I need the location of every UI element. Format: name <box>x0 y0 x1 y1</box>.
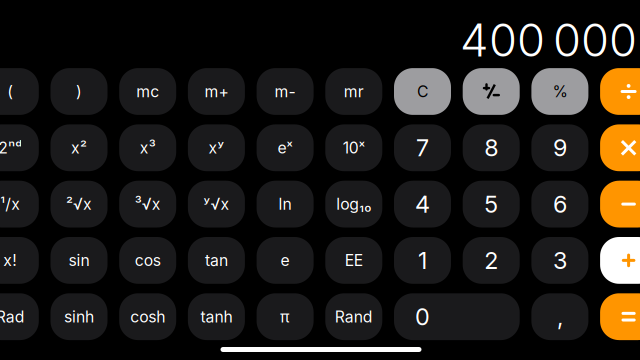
button[interactable]: sin <box>50 237 107 284</box>
button[interactable]: ʸ√x <box>188 181 245 227</box>
button[interactable]: Equals <box>600 293 640 340</box>
button[interactable]: log₁₀ <box>325 181 382 227</box>
button[interactable]: eˣ <box>257 124 314 171</box>
staticText: Rand <box>335 307 373 326</box>
staticText: 6 <box>553 190 567 218</box>
staticText: ¹/x <box>0 195 20 214</box>
button[interactable]: e <box>257 237 314 284</box>
button[interactable]: cos <box>119 237 176 284</box>
button[interactable]: 0 <box>394 293 520 340</box>
staticText: 8 <box>484 134 498 162</box>
button[interactable]: tan <box>188 237 245 284</box>
button[interactable]: ) <box>50 68 107 115</box>
staticText: tanh <box>200 307 232 326</box>
staticText: mr <box>344 82 364 101</box>
button[interactable]: 6 <box>531 181 588 227</box>
button[interactable]: m- <box>257 68 314 115</box>
button[interactable]: Rad <box>0 293 39 340</box>
button[interactable]: Plus Minus <box>463 68 520 115</box>
staticText: 1 <box>418 246 427 275</box>
staticText: x² <box>71 138 87 157</box>
button[interactable]: , <box>531 293 588 340</box>
button[interactable]: x! <box>0 237 39 284</box>
staticText: 10ˣ <box>343 138 365 157</box>
button[interactable]: ²√x <box>50 181 107 227</box>
staticText: m- <box>275 82 296 101</box>
staticText: , <box>557 302 563 331</box>
button[interactable]: EE <box>325 237 382 284</box>
button[interactable]: mc <box>119 68 176 115</box>
button[interactable]: 2 <box>463 237 520 284</box>
staticText: ʸ√x <box>203 195 229 214</box>
staticText: ln <box>279 195 292 214</box>
button[interactable]: C <box>394 68 451 115</box>
staticText: ) <box>76 82 82 101</box>
staticText: m+ <box>204 82 228 101</box>
staticText: 9 <box>553 134 567 162</box>
staticText: C <box>417 82 428 101</box>
staticText: cos <box>135 251 161 270</box>
button[interactable]: 10ˣ <box>325 124 382 171</box>
button[interactable]: % <box>531 68 588 115</box>
button[interactable]: Rand <box>325 293 382 340</box>
button[interactable]: 8 <box>463 124 520 171</box>
staticText: 2ⁿᵈ <box>0 138 22 157</box>
button[interactable]: 9 <box>531 124 588 171</box>
staticText: xʸ <box>208 138 224 157</box>
button[interactable]: mr <box>325 68 382 115</box>
staticText: ²√x <box>66 195 92 214</box>
button[interactable]: 7 <box>394 124 451 171</box>
button[interactable]: Multiply <box>600 124 640 171</box>
staticText: e <box>281 251 290 270</box>
staticText: tan <box>205 251 228 270</box>
staticText: cosh <box>130 307 165 326</box>
button[interactable]: 4 <box>394 181 451 227</box>
staticText: π <box>280 307 290 326</box>
staticText: 3 <box>553 246 567 275</box>
staticText: 2 <box>484 246 498 275</box>
staticText: 0 <box>415 302 430 331</box>
staticText: Rad <box>0 307 25 326</box>
staticText: ( <box>7 82 13 101</box>
button[interactable]: Divide <box>600 68 640 115</box>
button[interactable]: π <box>257 293 314 340</box>
staticText: sinh <box>64 307 94 326</box>
staticText: 5 <box>484 190 498 218</box>
button[interactable]: x³ <box>119 124 176 171</box>
button[interactable]: 2ⁿᵈ <box>0 124 39 171</box>
button[interactable]: ( <box>0 68 39 115</box>
button[interactable]: x² <box>50 124 107 171</box>
button[interactable]: tanh <box>188 293 245 340</box>
staticText: 400 000 <box>460 13 637 67</box>
staticText: 7 <box>416 134 429 162</box>
button[interactable]: 5 <box>463 181 520 227</box>
staticText: x³ <box>140 138 156 157</box>
button[interactable]: ³√x <box>119 181 176 227</box>
button[interactable]: Plus <box>600 237 640 284</box>
button[interactable]: xʸ <box>188 124 245 171</box>
button[interactable]: cosh <box>119 293 176 340</box>
staticText: 4 <box>415 190 430 218</box>
button[interactable]: ¹/x <box>0 181 39 227</box>
staticText: log₁₀ <box>336 195 371 214</box>
staticText: eˣ <box>278 138 293 157</box>
staticText: EE <box>345 251 363 270</box>
staticText: % <box>552 82 567 101</box>
button[interactable]: sinh <box>50 293 107 340</box>
staticText: ³√x <box>135 195 161 214</box>
button[interactable]: ln <box>257 181 314 227</box>
staticText: sin <box>68 251 89 270</box>
button[interactable]: 3 <box>531 237 588 284</box>
staticText: mc <box>136 82 159 101</box>
button[interactable]: 1 <box>394 237 451 284</box>
button[interactable]: m+ <box>188 68 245 115</box>
button[interactable]: Minus <box>600 181 640 227</box>
staticText: x! <box>3 251 17 270</box>
